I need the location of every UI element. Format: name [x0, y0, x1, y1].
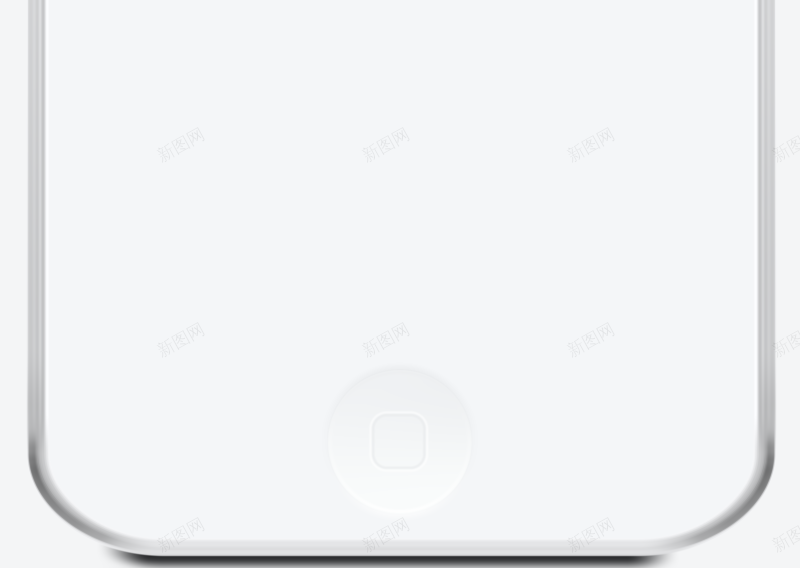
button[interactable]: Home — [328, 370, 472, 514]
